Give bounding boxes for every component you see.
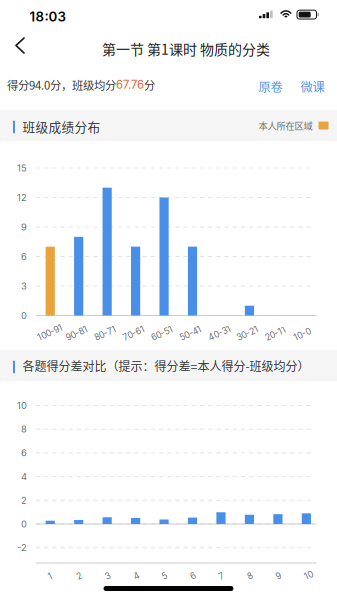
staticText: 9 xyxy=(21,221,27,233)
staticText: 7 xyxy=(217,572,222,583)
button[interactable]: 原卷 xyxy=(249,68,291,104)
staticText: 70-61 xyxy=(121,333,144,344)
staticText: 3 xyxy=(103,572,108,583)
staticText: 各题得分差对比（提示：得分差=本人得分-班级均分） xyxy=(23,357,310,375)
staticText: 微课 xyxy=(300,77,324,95)
staticText: 4 xyxy=(132,572,138,583)
staticText: 8 xyxy=(245,572,250,583)
staticText: 6 xyxy=(21,251,27,262)
staticText: 60-51 xyxy=(150,333,173,344)
staticText: -2 xyxy=(17,542,27,553)
staticText: 30-21 xyxy=(235,333,258,344)
staticText: 2 xyxy=(21,495,27,506)
staticText: 10-0 xyxy=(292,333,310,344)
button[interactable]: 微课 xyxy=(291,68,333,104)
staticText: 40-31 xyxy=(206,333,230,344)
staticText: 0 xyxy=(21,518,27,530)
staticText: 第一节 第1课时 物质的分类 xyxy=(102,38,270,59)
staticText: 12 xyxy=(17,192,27,203)
staticText: 班级成绩分布 xyxy=(23,117,101,135)
staticText: 2 xyxy=(75,572,80,583)
staticText: 4 xyxy=(21,471,27,482)
button[interactable]: 返回 xyxy=(0,28,40,62)
staticText: 67.76 xyxy=(116,78,144,91)
staticText: 6 xyxy=(188,572,193,583)
staticText: 10 xyxy=(302,572,311,583)
staticText: 100-91 xyxy=(36,333,63,344)
staticText: 5 xyxy=(160,572,165,583)
staticText: 分 xyxy=(144,76,155,93)
staticText: 本人所在区域 xyxy=(258,119,312,132)
staticText: 90-81 xyxy=(64,333,87,344)
staticText: 80-71 xyxy=(93,333,116,344)
staticText: 得分94.0分，班级均分 xyxy=(7,76,116,93)
staticText: 9 xyxy=(274,572,279,583)
staticText: 原卷 xyxy=(258,77,282,95)
staticText: 10 xyxy=(17,400,27,411)
staticText: 18:03 xyxy=(29,9,65,25)
staticText: 8 xyxy=(21,424,27,435)
staticText: 50-41 xyxy=(178,333,201,344)
staticText: 15 xyxy=(17,162,27,174)
staticText: 3 xyxy=(21,280,27,292)
staticText: 20-11 xyxy=(263,333,285,344)
staticText: 0 xyxy=(21,310,27,321)
staticText: 6 xyxy=(21,447,27,459)
staticText: 1 xyxy=(46,572,50,583)
